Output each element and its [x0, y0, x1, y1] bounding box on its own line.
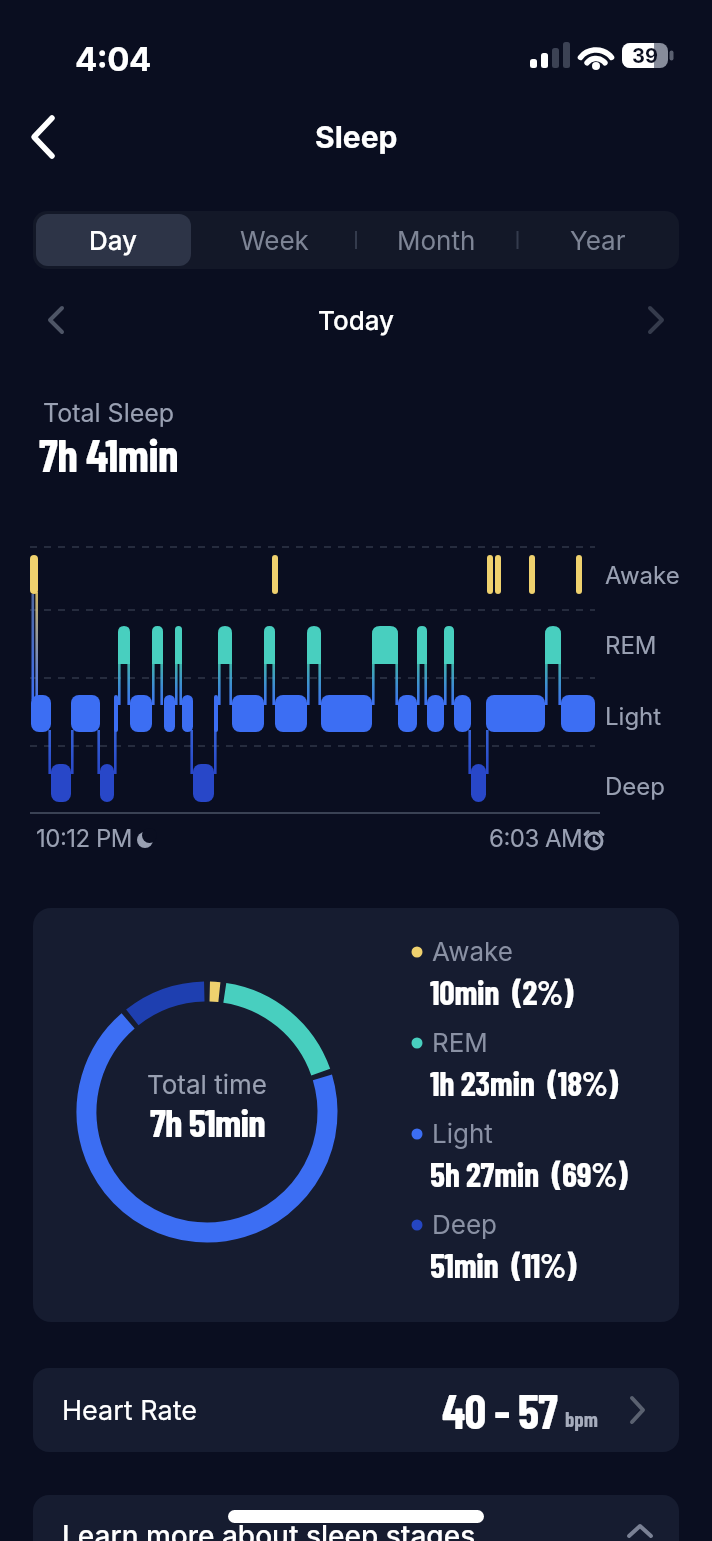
button[interactable] [20, 105, 76, 165]
staticText: 7h 41min [39, 426, 179, 481]
button[interactable]: Week [194, 211, 355, 269]
staticText: REM [605, 631, 657, 660]
staticText: 51min (11%) [430, 1244, 577, 1285]
staticText: 6:03 AM [489, 824, 583, 853]
staticText: Deep [605, 772, 665, 801]
staticText: Day [89, 225, 138, 256]
staticText: 4:04 [75, 39, 151, 79]
staticText: Awake [605, 561, 680, 590]
staticText: Month [397, 225, 476, 256]
button[interactable]: Month [356, 211, 517, 269]
staticText: 1h 23min (18%) [430, 1062, 618, 1103]
button[interactable]: Heart Rate [33, 1368, 679, 1452]
button[interactable]: Day [33, 211, 194, 269]
staticText: Learn more about sleep stages [62, 1519, 476, 1541]
staticText: 10min (2%) [430, 971, 574, 1012]
staticText: bpm [565, 1406, 598, 1431]
button[interactable] [632, 295, 682, 345]
staticText: 5h 27min (69%) [430, 1153, 628, 1194]
staticText: 10:12 PM [36, 824, 132, 853]
staticText: REM [432, 1027, 488, 1058]
staticText: Heart Rate [62, 1394, 197, 1427]
staticText: Deep [432, 1209, 497, 1240]
staticText: 7h 51min [150, 1098, 265, 1142]
staticText: Light [432, 1118, 493, 1149]
staticText: 40 - 57 [442, 1381, 558, 1439]
staticText: Week [240, 225, 309, 256]
staticText: 39 [632, 44, 658, 68]
button[interactable] [30, 295, 80, 345]
staticText: Total Sleep [43, 398, 175, 428]
button[interactable]: Total time [33, 908, 679, 1322]
staticText: Today [318, 305, 395, 336]
staticText: Sleep [315, 119, 398, 155]
staticText: Total time [147, 1069, 267, 1100]
button[interactable]: Year [517, 211, 678, 269]
staticText: Year [570, 225, 626, 256]
staticText: Awake [432, 936, 513, 967]
staticText: Light [605, 702, 662, 731]
button[interactable]: Learn more about sleep stages [33, 1495, 679, 1541]
